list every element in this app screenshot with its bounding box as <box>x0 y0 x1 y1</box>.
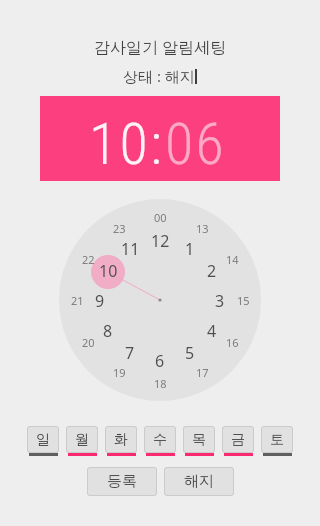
staticText: 10: <box>89 110 165 178</box>
staticText: 토 <box>270 431 284 449</box>
staticText: 20 <box>82 335 95 350</box>
staticText: 12 <box>151 230 170 250</box>
button[interactable]: 월 <box>66 426 98 456</box>
staticText: 23 <box>113 221 126 236</box>
staticText: 월 <box>75 431 89 449</box>
staticText: 2 <box>207 260 217 280</box>
button[interactable]: 등록 <box>87 467 157 496</box>
staticText: 10 <box>99 260 118 280</box>
staticText: 18 <box>154 376 167 391</box>
staticText: 16 <box>226 335 239 350</box>
staticText: 해지 <box>184 472 214 491</box>
staticText: 21 <box>71 293 84 308</box>
staticText: 6 <box>155 350 165 370</box>
button[interactable]: 금 <box>222 426 254 456</box>
staticText: 목 <box>192 431 206 449</box>
staticText: 화 <box>114 431 128 449</box>
button[interactable]: 화 <box>105 426 137 456</box>
staticText: 금 <box>231 431 245 449</box>
staticText: 일 <box>36 431 50 449</box>
staticText: 3 <box>215 290 225 310</box>
button[interactable]: 목 <box>183 426 215 456</box>
staticText: 11 <box>121 238 140 258</box>
staticText: 상태 : 해지 <box>123 66 195 86</box>
staticText: 7 <box>125 342 135 362</box>
button[interactable]: 토 <box>261 426 293 456</box>
button[interactable]: 수 <box>144 426 176 456</box>
staticText: 15 <box>237 293 250 308</box>
staticText: 등록 <box>107 472 137 491</box>
staticText: 수 <box>153 431 167 449</box>
button[interactable]: 일 <box>27 426 59 456</box>
button[interactable]: 해지 <box>164 467 234 496</box>
staticText: 8 <box>103 320 113 340</box>
staticText: 13 <box>196 221 209 236</box>
staticText: 1 <box>185 238 195 258</box>
staticText: 9 <box>95 290 105 310</box>
staticText: 17 <box>196 365 209 380</box>
staticText: 22 <box>82 252 95 267</box>
staticText: 5 <box>185 342 195 362</box>
staticText: 감사일기 알림세팅 <box>94 36 227 58</box>
staticText: 4 <box>207 320 217 340</box>
staticText: 14 <box>226 252 239 267</box>
staticText: 19 <box>113 365 126 380</box>
staticText: 00 <box>154 210 167 225</box>
staticText: 06 <box>165 110 227 178</box>
